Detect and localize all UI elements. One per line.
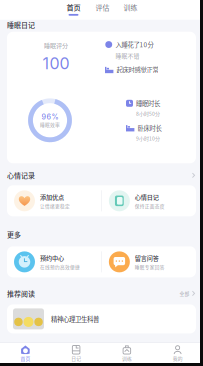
staticText: 9小时10分	[136, 135, 160, 142]
button[interactable]: 留言问答	[102, 246, 196, 277]
button[interactable]: 首页	[0, 345, 51, 362]
staticText: 让情绪更稳定	[40, 203, 70, 209]
staticText: 留言问答	[135, 253, 159, 262]
staticText: 首页	[66, 2, 80, 12]
staticText: 推荐阅读	[7, 288, 35, 298]
button[interactable]: 预约中心	[7, 246, 101, 277]
staticText: 首页	[20, 355, 30, 362]
button[interactable]: 评估	[88, 2, 116, 15]
button[interactable]: 精神心理卫生科普	[7, 304, 196, 333]
staticText: 心情记录	[7, 170, 35, 180]
staticText: 添加优点	[40, 192, 64, 201]
staticText: 训练	[122, 355, 132, 362]
staticText: 更多	[7, 229, 21, 239]
button[interactable]: 训练	[101, 345, 152, 362]
staticText: 保持正面态度	[135, 203, 165, 209]
button[interactable]: 心情日记	[102, 185, 196, 216]
staticText: 睡眠效率	[40, 121, 60, 128]
staticText: 睡眠专家回答	[135, 264, 165, 270]
button[interactable]: 添加优点	[7, 185, 101, 216]
button[interactable]: 日记	[51, 345, 102, 362]
staticText: 睡眠评分	[44, 41, 68, 50]
staticText: 睡眠时长	[136, 99, 160, 108]
staticText: 睡眠不错	[115, 51, 139, 60]
staticText: 全部	[179, 290, 189, 297]
staticText: 入睡花了10分	[115, 40, 153, 49]
staticText: 起床时感觉正常	[116, 65, 158, 74]
staticText: 96%	[41, 112, 58, 121]
staticText: 在线预约高效便捷	[40, 264, 80, 270]
button[interactable]: 训练	[116, 2, 144, 15]
button[interactable]: 我的	[152, 345, 203, 362]
button[interactable]: 首页	[58, 2, 88, 16]
staticText: 卧床时长	[137, 123, 161, 133]
staticText: 睡眠日记	[7, 20, 35, 30]
staticText: 精神心理卫生科普	[51, 314, 99, 324]
staticText: 训练	[123, 2, 137, 12]
staticText: 8小时50分	[136, 110, 160, 117]
staticText: 预约中心	[40, 253, 64, 262]
staticText: 心情日记	[135, 192, 159, 201]
staticText: 日记	[71, 355, 81, 362]
staticText: 100	[42, 54, 69, 73]
staticText: 评估	[95, 2, 109, 12]
staticText: 我的	[173, 355, 183, 362]
